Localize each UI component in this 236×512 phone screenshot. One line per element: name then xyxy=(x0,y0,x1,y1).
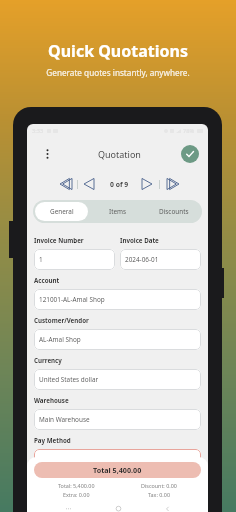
staticText: Extra: 0.00 xyxy=(63,491,90,498)
button[interactable]: Discounts xyxy=(146,200,202,223)
staticText: AL-Amal Shop xyxy=(39,335,81,344)
staticText: 121001-AL-Amal Shop xyxy=(39,295,105,304)
staticText: 1 xyxy=(39,255,43,264)
button[interactable]: Home xyxy=(110,504,126,512)
staticText: Discount: 0.00 xyxy=(141,482,177,489)
staticText: Total 5,400.00 xyxy=(93,465,142,475)
button[interactable]: More options xyxy=(40,147,54,161)
button[interactable]: Items xyxy=(90,200,146,223)
staticText: 78% xyxy=(183,127,195,135)
staticText: Total: 5,400.00 xyxy=(58,482,95,489)
staticText: General xyxy=(50,207,74,216)
staticText: 0 of 9 xyxy=(110,180,129,189)
button[interactable]: AL-Amal Shop xyxy=(34,329,201,350)
staticText: Warehouse xyxy=(34,396,69,404)
button[interactable]: Next record xyxy=(141,177,153,191)
button[interactable]: General xyxy=(35,202,88,221)
button[interactable]: 2024-06-01 xyxy=(120,249,201,270)
staticText: Quotation xyxy=(98,148,141,160)
button[interactable]: Save quotation xyxy=(181,145,199,163)
staticText: Pay Method xyxy=(34,436,71,444)
staticText: Quick Quotations xyxy=(48,40,188,62)
staticText: Invoice Number xyxy=(34,236,84,244)
staticText: Items xyxy=(109,207,127,216)
button[interactable]: Back xyxy=(159,504,175,512)
staticText: Main Warehouse xyxy=(39,415,90,424)
button[interactable]: Previous record xyxy=(83,177,95,191)
button[interactable]: First record xyxy=(59,177,73,191)
staticText: Generate quotes instantly, anywhere. xyxy=(46,67,190,78)
staticText: Account xyxy=(34,276,60,284)
staticText: 3:33 xyxy=(32,127,44,135)
staticText: Discounts xyxy=(159,207,189,216)
staticText: Customer/Vendor xyxy=(34,316,89,324)
button[interactable]: Recent apps xyxy=(60,504,76,512)
staticText: Currency xyxy=(34,356,62,364)
staticText: Tax: 0.00 xyxy=(148,491,170,498)
button[interactable]: 1 xyxy=(34,249,115,270)
button[interactable]: Last record xyxy=(166,177,180,191)
staticText: 2024-06-01 xyxy=(125,255,159,264)
button[interactable]: Main Warehouse xyxy=(34,409,201,430)
button[interactable]: Total 5,400.00 xyxy=(34,462,201,478)
button[interactable]: United States dollar xyxy=(34,369,201,390)
button[interactable]: 121001-AL-Amal Shop xyxy=(34,289,201,310)
staticText: United States dollar xyxy=(39,375,99,384)
staticText: Invoice Date xyxy=(120,236,159,244)
